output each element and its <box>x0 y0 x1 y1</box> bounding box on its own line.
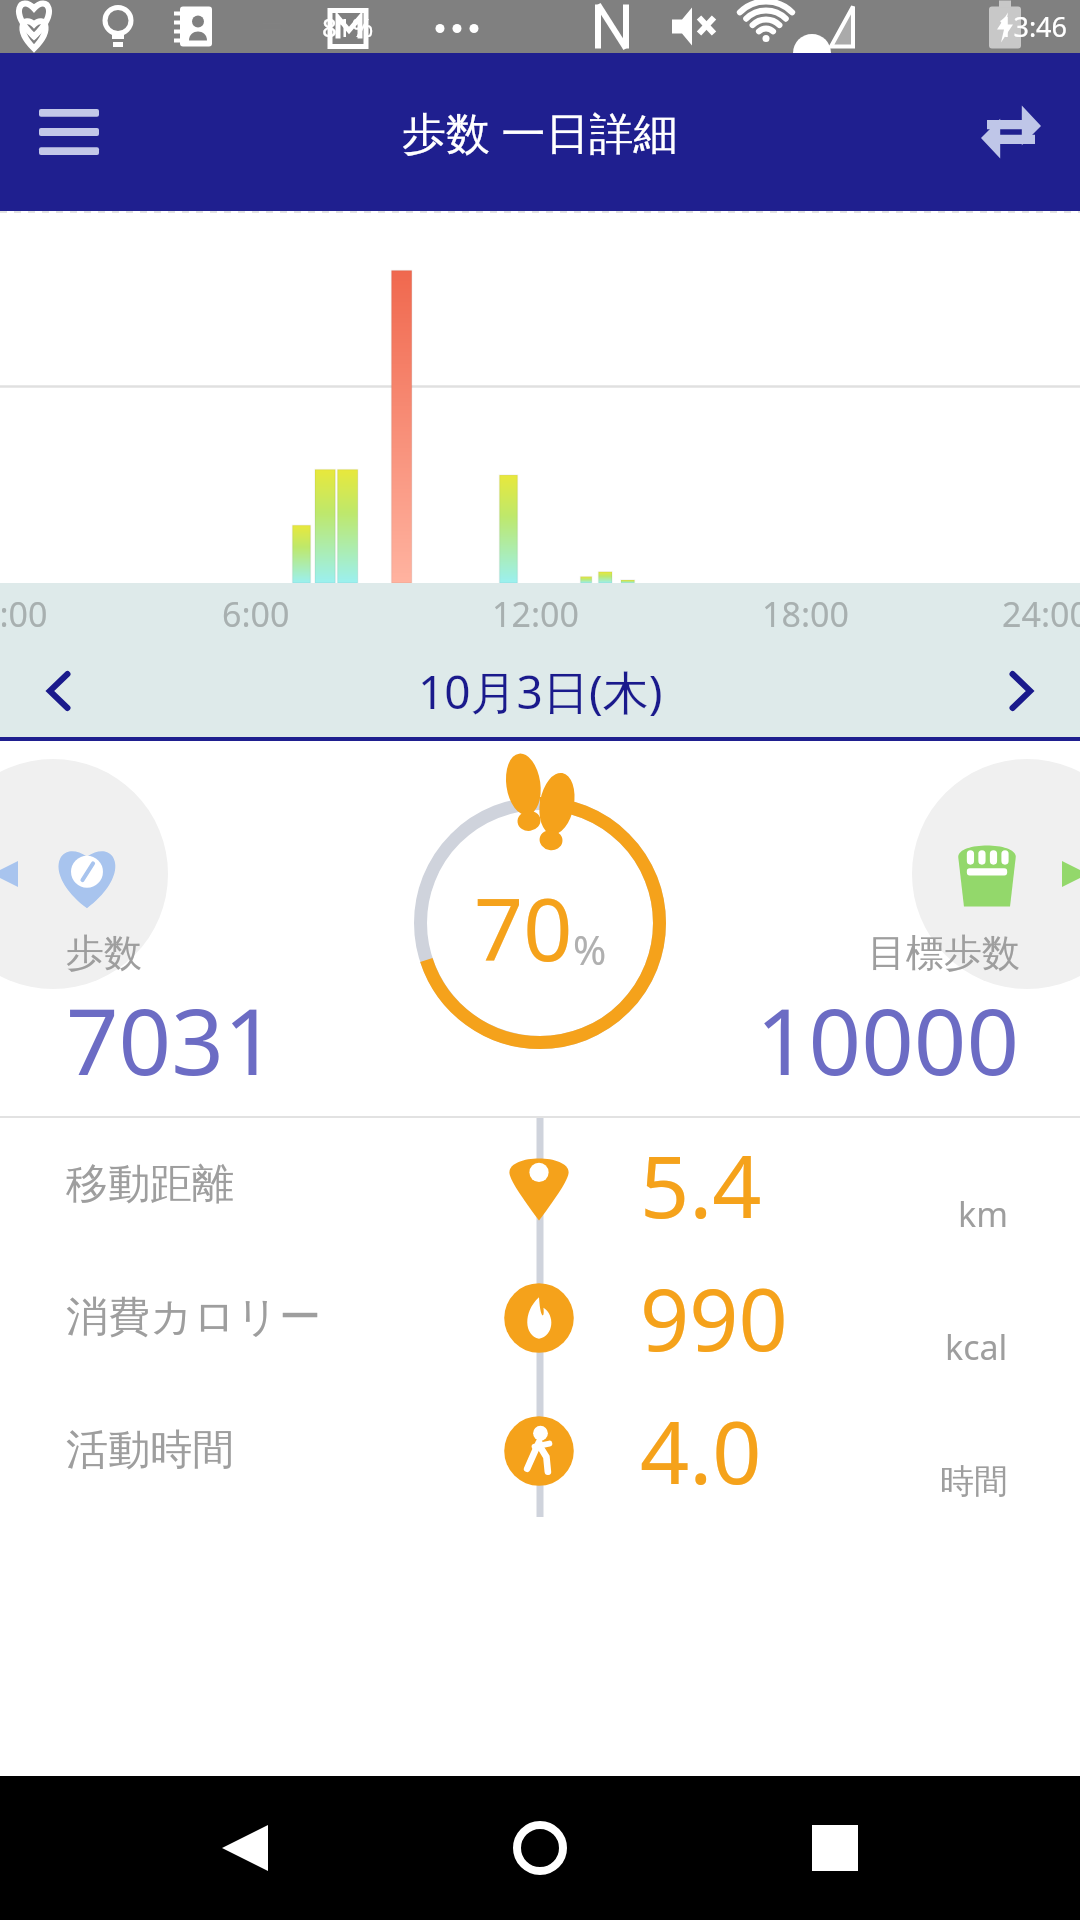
staticText: 5.4 <box>640 1126 762 1243</box>
button[interactable]: Home <box>490 1798 590 1898</box>
button[interactable]: Previous metric <box>0 759 168 989</box>
staticText: 消費カロリー <box>66 1291 321 1344</box>
button[interactable]: Back <box>195 1798 295 1898</box>
staticText: 4.0 <box>640 1392 762 1509</box>
button[interactable]: Next metric <box>912 759 1080 989</box>
staticText: 6:00 <box>222 591 290 637</box>
staticText: 移動距離 <box>66 1158 234 1211</box>
staticText: 990 <box>640 1259 788 1376</box>
button[interactable]: 移動距離 <box>0 1118 1080 1251</box>
staticText: 13:46 <box>998 8 1068 45</box>
staticText: 7031 <box>66 977 277 1102</box>
staticText: km <box>958 1191 1008 1237</box>
button[interactable]: Previous day <box>0 645 120 737</box>
staticText: kcal <box>945 1324 1008 1370</box>
staticText: 活動時間 <box>66 1424 234 1477</box>
button[interactable]: 消費カロリー <box>0 1251 1080 1384</box>
button[interactable]: Recent apps <box>785 1798 885 1898</box>
button[interactable]: Next day <box>960 645 1080 737</box>
staticText: 時間 <box>940 1460 1008 1503</box>
staticText: 12:00 <box>492 591 579 637</box>
staticText: 18:00 <box>762 591 849 637</box>
staticText: 歩数 <box>66 929 142 977</box>
staticText: 10月3日(木) <box>418 660 663 723</box>
button[interactable]: 活動時間 <box>0 1384 1080 1517</box>
button[interactable]: Sync <box>968 89 1054 175</box>
button[interactable]: Menu <box>28 91 110 173</box>
staticText: 70 <box>474 869 573 986</box>
staticText: 10000 <box>756 977 1020 1102</box>
staticText: 0:00 <box>0 591 48 637</box>
staticText: % <box>573 922 607 976</box>
staticText: 歩数 一日詳細 <box>402 102 678 162</box>
staticText: 24:00 <box>1002 591 1080 637</box>
staticText: 81% <box>322 9 374 44</box>
staticText: 目標歩数 <box>868 929 1020 977</box>
